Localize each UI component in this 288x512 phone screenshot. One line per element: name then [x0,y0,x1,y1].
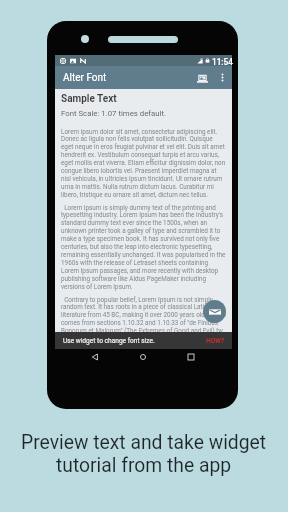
button[interactable]: More options [214,69,230,85]
staticText: Lorem Ipsum is simply dummy text of the … [61,204,226,290]
button[interactable]: Recent apps [183,349,199,365]
staticText: Alter Font [63,72,107,84]
staticText: Lorem ipsum dolor sit amet, consectetur … [61,128,226,198]
button[interactable]: Use widget to change font size. [55,332,232,349]
button[interactable]: Send feedback email [203,300,226,323]
staticText: Preview text and take widget [21,431,267,454]
button[interactable]: Home [135,349,151,365]
staticText: Use widget to change font size. [63,337,155,345]
staticText: HOW? [206,337,225,345]
staticText: Font Scale: 1.07 times default. [61,109,167,118]
staticText: Sample Text [61,93,117,105]
button[interactable]: Back [87,349,103,365]
staticText: 11:54 [212,57,233,67]
staticText: Contrary to popular belief, Lorem Ipsum … [61,296,226,342]
button[interactable]: Preview on device [193,69,211,87]
staticText: tutorial from the app [56,454,232,477]
